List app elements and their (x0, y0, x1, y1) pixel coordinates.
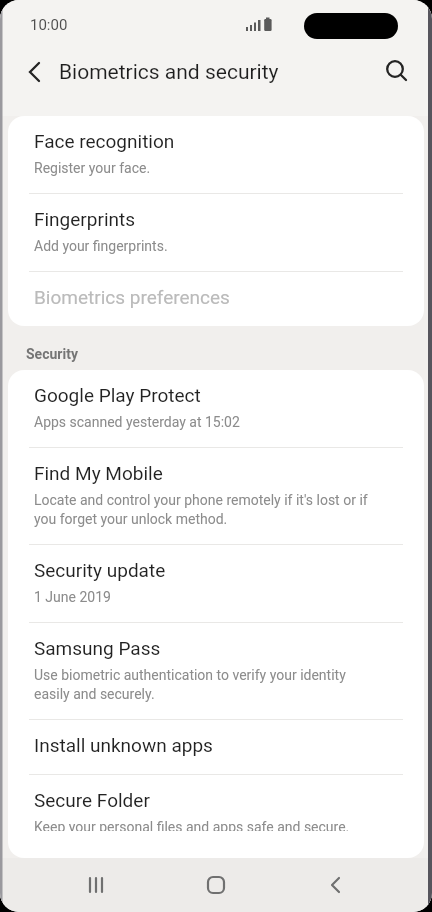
staticText: Security update (34, 556, 166, 582)
staticText: Samsung Pass (34, 634, 161, 660)
button[interactable] (372, 50, 420, 94)
staticText: 1 June 2019 (34, 587, 111, 606)
staticText: 10:00 (30, 16, 68, 34)
staticText: Biometrics preferences (34, 283, 230, 309)
button[interactable]: Fingerprints (8, 194, 424, 271)
staticText: Add your fingerprints. (34, 236, 168, 255)
staticText: Use biometric authentication to verify y… (34, 665, 346, 703)
button[interactable] (9, 50, 57, 94)
staticText: Apps scanned yesterday at 15:02 (34, 412, 240, 431)
button[interactable]: Secure Folder (8, 775, 424, 858)
button[interactable] (192, 861, 240, 909)
staticText: Biometrics and security (59, 60, 279, 85)
button[interactable]: Biometrics preferences (8, 272, 424, 326)
staticText: Google Play Protect (34, 381, 201, 407)
button[interactable]: Face recognition (8, 116, 424, 193)
staticText: Register your face. (34, 158, 151, 177)
staticText: Face recognition (34, 127, 175, 153)
staticText: Keep your personal files and apps safe a… (34, 817, 350, 831)
button[interactable]: Find My Mobile (8, 448, 424, 544)
staticText: Install unknown apps (34, 731, 213, 757)
staticText: Fingerprints (34, 205, 136, 231)
button[interactable]: Install unknown apps (8, 720, 424, 774)
staticText: Locate and control your phone remotely i… (34, 490, 368, 528)
button[interactable] (311, 861, 359, 909)
button[interactable]: Samsung Pass (8, 623, 424, 719)
staticText: Security (26, 346, 78, 363)
button[interactable]: Security update (8, 545, 424, 622)
button[interactable]: Google Play Protect (8, 370, 424, 447)
button[interactable] (72, 861, 120, 909)
staticText: Find My Mobile (34, 459, 163, 485)
staticText: Secure Folder (34, 786, 150, 812)
